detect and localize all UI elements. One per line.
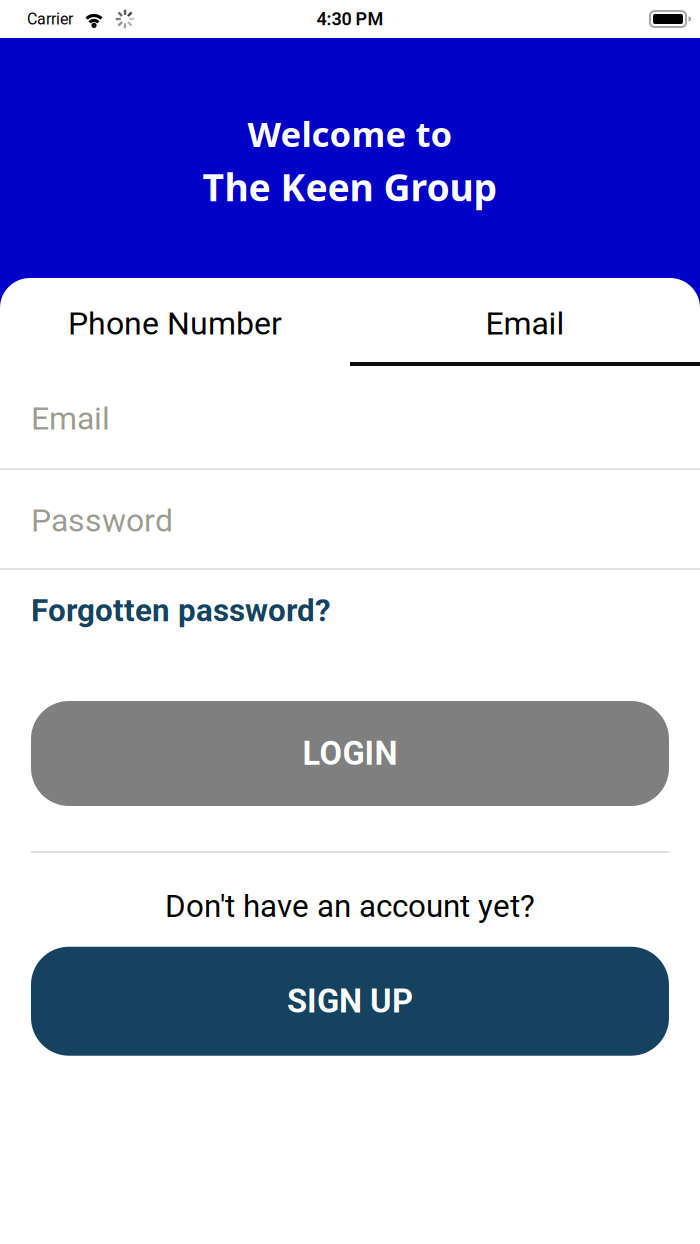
staticText: Carrier: [27, 10, 73, 28]
button[interactable]: Forgotten password?: [31, 592, 331, 629]
staticText: SIGN UP: [287, 982, 413, 1020]
staticText: Email: [485, 305, 564, 342]
textField[interactable]: Email: [31, 400, 700, 437]
staticText: Password: [31, 502, 173, 539]
staticText: Don't have an account yet?: [165, 888, 535, 925]
button[interactable]: Email: [350, 278, 700, 362]
secureTextField[interactable]: Password: [31, 502, 700, 539]
staticText: Phone Number: [68, 305, 282, 342]
button[interactable]: Phone Number: [0, 278, 350, 362]
staticText: The Keen Group: [202, 161, 497, 212]
button[interactable]: LOGIN: [31, 701, 669, 806]
staticText: Email: [31, 400, 110, 437]
staticText: 4:30 PM: [316, 8, 383, 30]
staticText: Welcome to: [247, 110, 452, 157]
staticText: LOGIN: [302, 734, 397, 773]
button[interactable]: SIGN UP: [31, 947, 669, 1056]
staticText: Forgotten password?: [31, 592, 331, 629]
